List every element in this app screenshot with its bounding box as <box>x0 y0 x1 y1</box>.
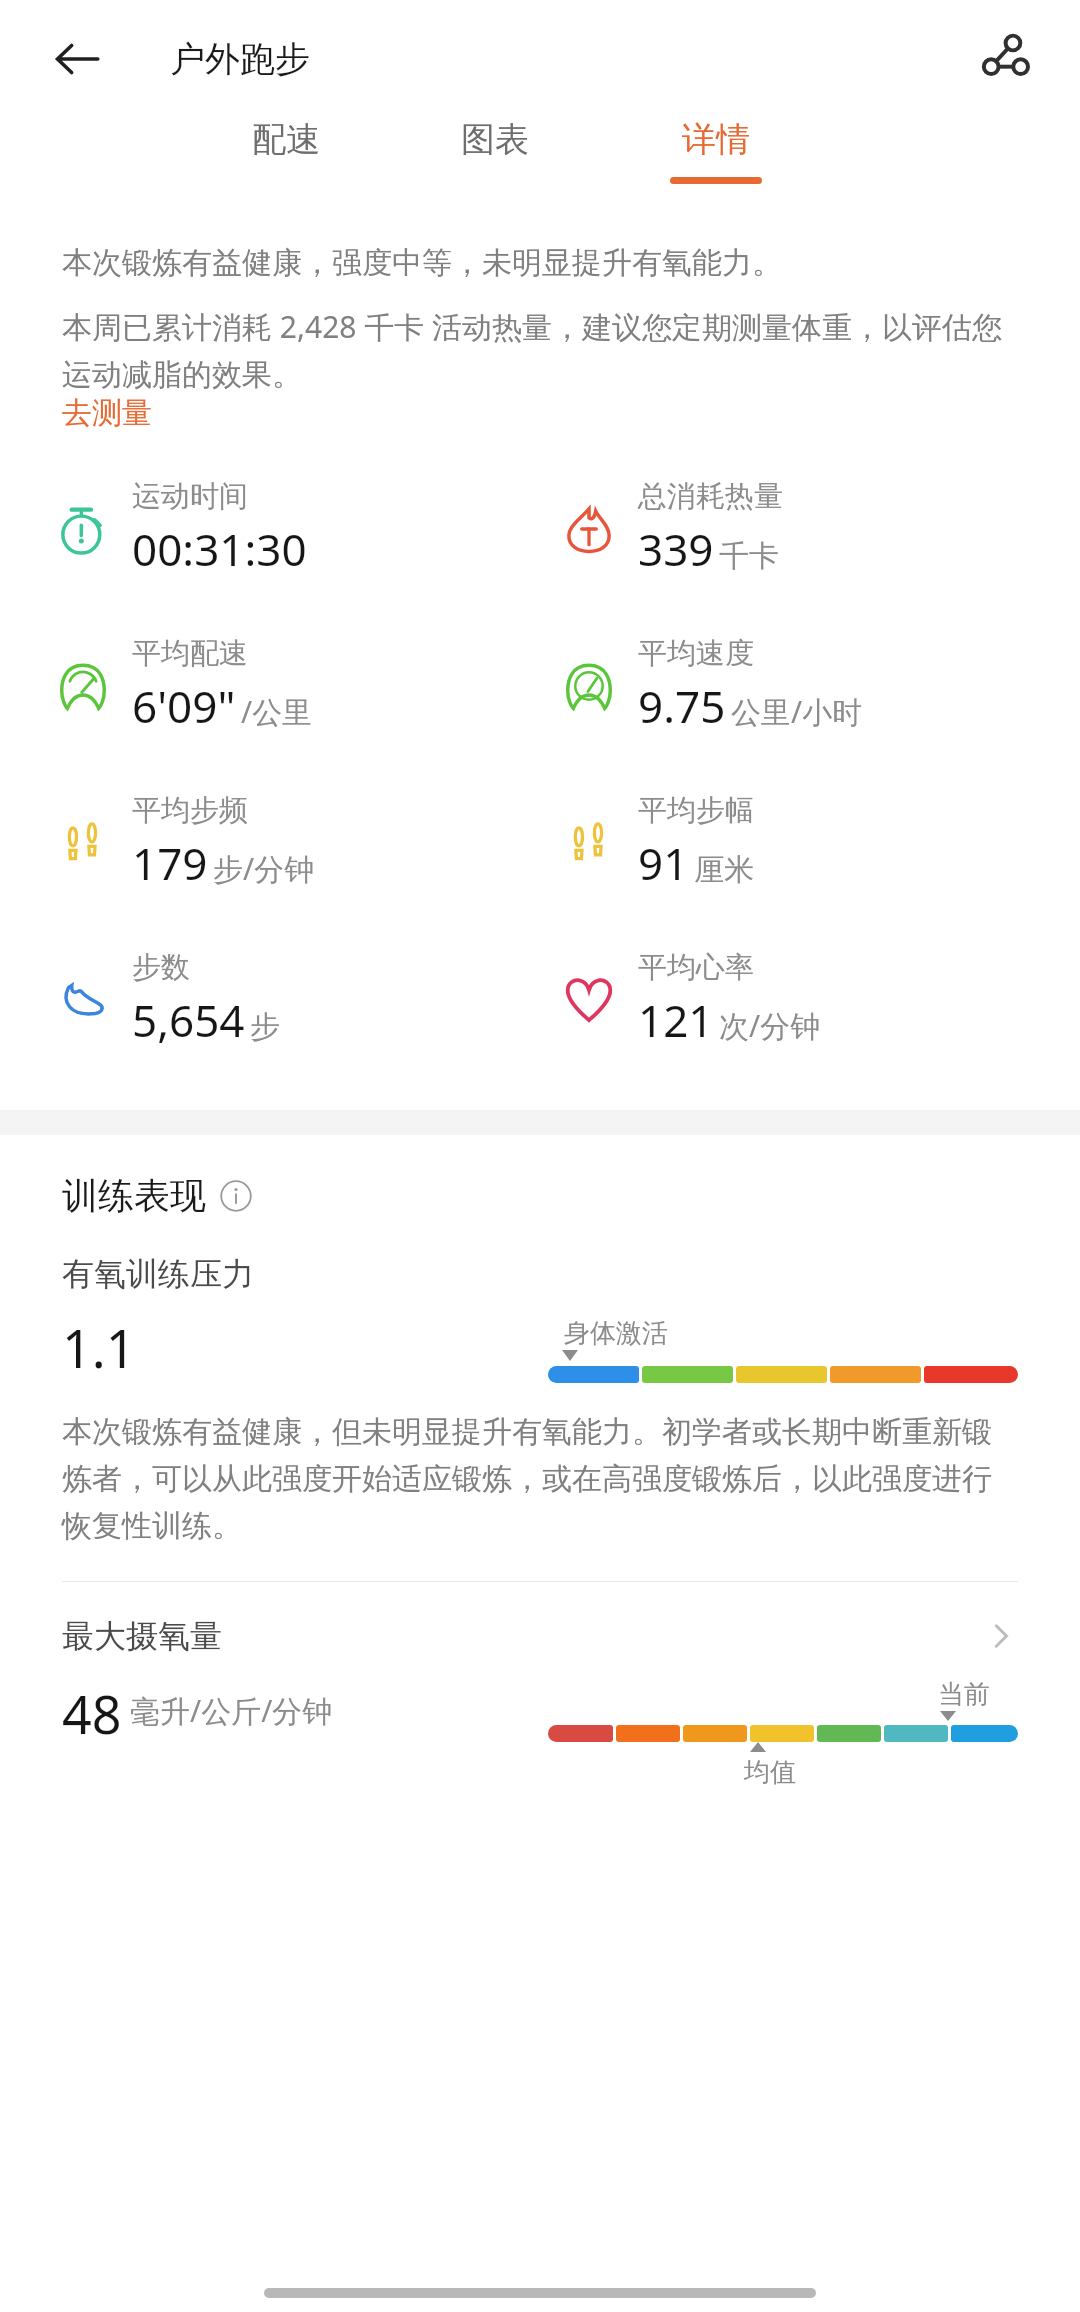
button[interactable]: 运动时间 <box>52 478 540 579</box>
staticText: 步数 <box>132 949 190 986</box>
staticText: 运动时间 <box>132 478 248 515</box>
staticText: 48 <box>62 1678 122 1749</box>
staticText: 6'09" <box>132 676 236 736</box>
staticText: /公里 <box>241 691 313 732</box>
staticText: 步 <box>250 1008 280 1046</box>
staticText: 千卡 <box>719 537 779 575</box>
staticText: 121 <box>638 990 714 1050</box>
button[interactable]: Share <box>972 27 1036 91</box>
staticText: 00:31:30 <box>132 519 307 579</box>
button[interactable]: 训练表现 <box>62 1173 252 1218</box>
button[interactable]: 图表 <box>453 118 537 177</box>
staticText: 图表 <box>461 118 529 161</box>
staticText: 339 <box>638 519 714 579</box>
other: Info <box>220 1180 252 1212</box>
staticText: 当前 <box>938 1678 990 1711</box>
button[interactable]: 平均速度 <box>558 635 1080 736</box>
staticText: 本次锻炼有益健康，但未明显提升有氧能力。初学者或长期中断重新锻炼者，可以从此强度… <box>62 1413 1018 1545</box>
staticText: 均值 <box>744 1756 796 1789</box>
staticText: 9.75 <box>638 676 726 736</box>
staticText: 户外跑步 <box>170 37 310 81</box>
staticText: 训练表现 <box>62 1173 206 1218</box>
button[interactable]: 平均步频 <box>52 792 540 893</box>
button[interactable]: 平均配速 <box>52 635 540 736</box>
staticText: 平均配速 <box>132 635 248 672</box>
button[interactable]: 平均心率 <box>558 949 1080 1050</box>
staticText: 配速 <box>252 118 320 161</box>
staticText: 去测量 <box>62 394 152 432</box>
staticText: 平均速度 <box>638 635 754 672</box>
staticText: 详情 <box>682 118 750 161</box>
staticText: 平均步幅 <box>638 792 754 829</box>
button[interactable]: 平均步幅 <box>558 792 1080 893</box>
button[interactable]: 去测量 <box>62 394 152 432</box>
staticText: 厘米 <box>694 851 754 889</box>
staticText: 5,654 <box>132 990 245 1050</box>
staticText: 本周已累计消耗 2,428 千卡 活动热量，建议您定期测量体重，以评估您运动减脂… <box>62 306 1018 394</box>
button[interactable]: 总消耗热量 <box>558 478 1080 579</box>
staticText: 1.1 <box>62 1312 136 1383</box>
staticText: 次/分钟 <box>719 1005 821 1046</box>
staticText: 步/分钟 <box>213 848 315 889</box>
staticText: 最大摄氧量 <box>62 1616 222 1656</box>
staticText: 公里/小时 <box>731 691 863 732</box>
staticText: 91 <box>638 833 689 893</box>
button[interactable]: 最大摄氧量 <box>62 1582 1018 1789</box>
staticText: 本次锻炼有益健康，强度中等，未明显提升有氧能力。 <box>62 244 782 282</box>
button[interactable]: 详情 <box>662 118 770 184</box>
staticText: 总消耗热量 <box>638 478 783 515</box>
staticText: 平均步频 <box>132 792 248 829</box>
button[interactable]: 配速 <box>244 118 328 177</box>
button[interactable]: Back <box>44 27 108 91</box>
button[interactable]: 步数 <box>52 949 540 1050</box>
staticText: 平均心率 <box>638 949 754 986</box>
staticText: 179 <box>132 833 208 893</box>
staticText: 毫升/公斤/分钟 <box>130 1690 333 1731</box>
staticText: 身体激活 <box>564 1317 668 1350</box>
staticText: 有氧训练压力 <box>62 1254 254 1294</box>
